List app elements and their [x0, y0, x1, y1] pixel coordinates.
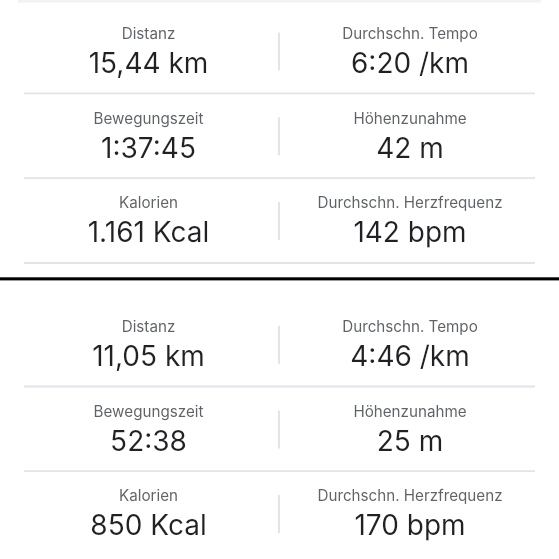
staticText: Distanz — [18, 317, 279, 335]
staticText: 142 bpm — [279, 215, 541, 249]
staticText: 1.161 Kcal — [18, 215, 279, 249]
staticText: Durchschn. Tempo — [279, 24, 541, 42]
staticText: Bewegungszeit — [18, 109, 279, 127]
button[interactable]: Höhenzunahme — [279, 93, 541, 178]
button[interactable]: Höhenzunahme — [279, 386, 541, 471]
staticText: Höhenzunahme — [279, 402, 541, 420]
button[interactable]: Durchschn. Tempo — [279, 8, 541, 93]
button[interactable]: Durchschn. Herzfrequenz — [279, 470, 541, 555]
staticText: 850 Kcal — [18, 508, 279, 542]
staticText: Durchschn. Tempo — [279, 317, 541, 335]
staticText: Kalorien — [18, 486, 279, 504]
staticText: 4:46 /km — [279, 339, 541, 373]
staticText: Durchschn. Herzfrequenz — [279, 486, 541, 504]
button[interactable]: Bewegungszeit — [18, 386, 279, 471]
button[interactable]: Durchschn. Tempo — [279, 301, 541, 386]
staticText: 52:38 — [18, 424, 279, 458]
staticText: Durchschn. Herzfrequenz — [279, 193, 541, 211]
staticText: Bewegungszeit — [18, 402, 279, 420]
staticText: 11,05 km — [18, 339, 279, 373]
button[interactable]: Kalorien — [18, 177, 279, 262]
button[interactable]: Distanz — [18, 8, 279, 93]
button[interactable]: Distanz — [18, 301, 279, 386]
button[interactable]: Kalorien — [18, 470, 279, 555]
button[interactable]: Bewegungszeit — [18, 93, 279, 178]
staticText: Distanz — [18, 24, 279, 42]
staticText: 15,44 km — [18, 46, 279, 80]
staticText: Kalorien — [18, 193, 279, 211]
button[interactable]: Durchschn. Herzfrequenz — [279, 177, 541, 262]
staticText: 170 bpm — [279, 508, 541, 542]
staticText: 42 m — [279, 131, 541, 165]
staticText: 25 m — [279, 424, 541, 458]
staticText: 6:20 /km — [279, 46, 541, 80]
staticText: Höhenzunahme — [279, 109, 541, 127]
staticText: 1:37:45 — [18, 131, 279, 165]
